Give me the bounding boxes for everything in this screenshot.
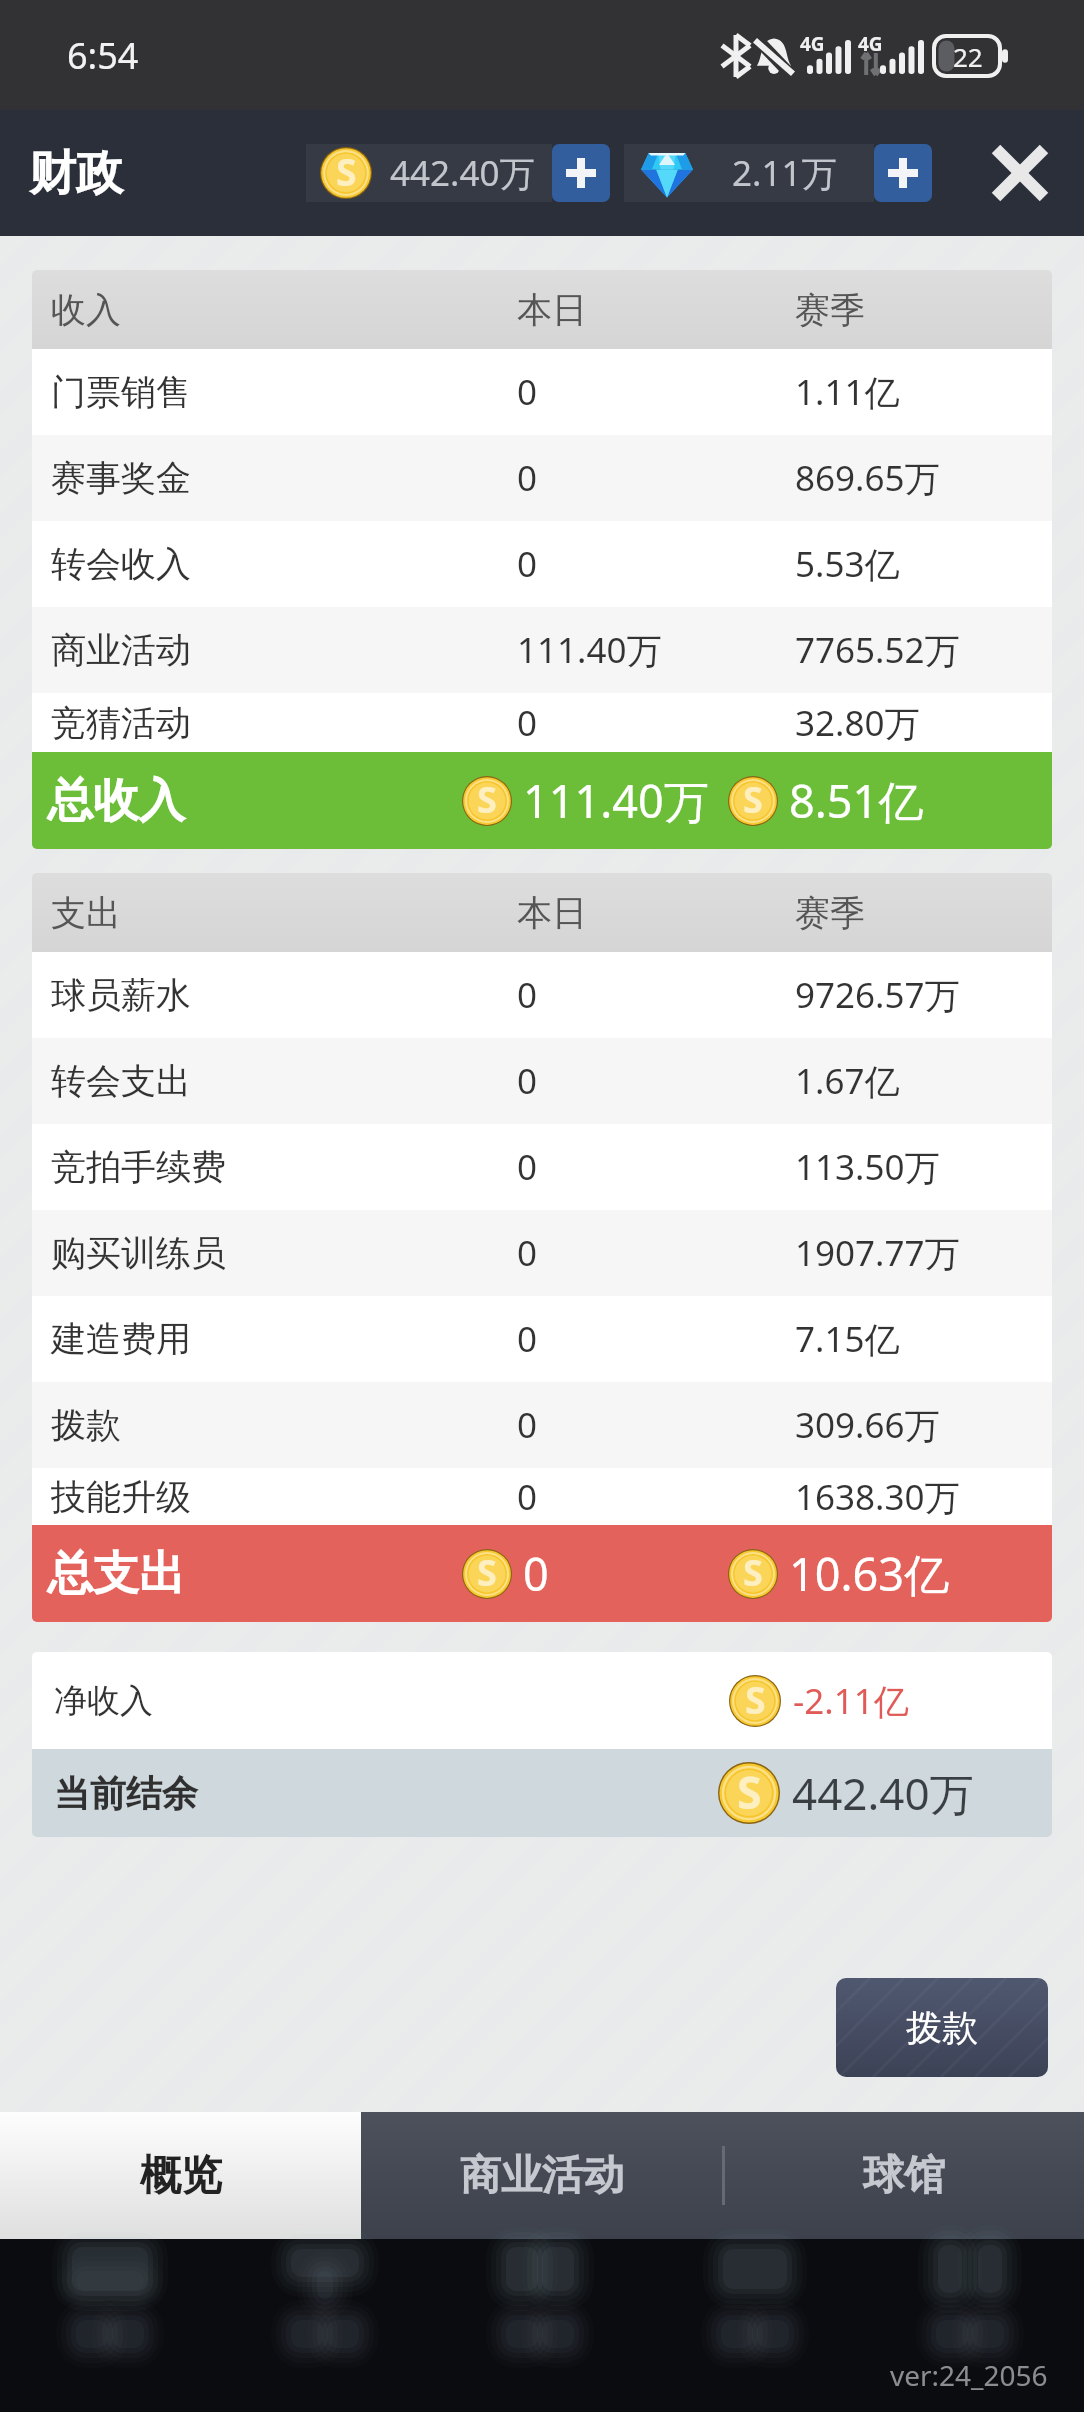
- staticText: 拨款: [906, 2005, 978, 2050]
- staticText: ver:24_2056: [890, 2356, 1048, 2394]
- staticText: 技能升级: [51, 1475, 191, 1519]
- staticText: 0: [517, 1401, 538, 1449]
- button[interactable]: 技能升级: [32, 1468, 1052, 1525]
- staticText: 总支出: [47, 1545, 185, 1603]
- staticText: 球员薪水: [51, 973, 191, 1017]
- staticText: 6:54: [67, 31, 139, 80]
- staticText: 4G: [858, 31, 883, 57]
- staticText: 0: [517, 1473, 538, 1521]
- staticText: 赛季: [795, 891, 865, 935]
- staticText: 0: [517, 368, 538, 416]
- staticText: 当前结余: [54, 1771, 198, 1816]
- staticText: 财政: [29, 144, 123, 203]
- button[interactable]: 赛事奖金: [32, 435, 1052, 521]
- button[interactable]: 商业活动: [32, 607, 1052, 693]
- staticText: 309.66万: [795, 1401, 940, 1449]
- staticText: 门票销售: [51, 370, 191, 414]
- staticText: S: [743, 1548, 763, 1597]
- button[interactable]: 拨款: [32, 1382, 1052, 1468]
- staticText: S: [745, 1674, 766, 1725]
- staticText: 本日: [517, 288, 587, 332]
- staticText: 4G: [800, 31, 825, 57]
- staticText: 111.40万: [523, 770, 709, 831]
- staticText: 869.65万: [795, 454, 940, 502]
- staticText: 净收入: [54, 1680, 153, 1722]
- staticText: 商业活动: [460, 2150, 624, 2202]
- button[interactable]: 门票销售: [32, 349, 1052, 435]
- staticText: 赛事奖金: [51, 456, 191, 500]
- staticText: 1.11亿: [795, 368, 900, 416]
- staticText: S: [336, 146, 357, 197]
- staticText: 转会支出: [51, 1059, 191, 1103]
- staticText: 442.40万: [390, 149, 535, 197]
- staticText: 1907.77万: [795, 1229, 960, 1277]
- button[interactable]: 球馆: [723, 2112, 1084, 2239]
- staticText: 0: [517, 1229, 538, 1277]
- button[interactable]: 概览: [0, 2112, 361, 2239]
- button[interactable]: 商业活动: [361, 2112, 723, 2239]
- staticText: S: [737, 1761, 762, 1822]
- button[interactable]: 球员薪水: [32, 952, 1052, 1038]
- staticText: 113.50万: [795, 1143, 940, 1191]
- staticText: 22: [953, 39, 983, 74]
- button[interactable]: Close: [980, 133, 1060, 213]
- staticText: 竞猜活动: [51, 701, 191, 745]
- staticText: 10.63亿: [789, 1543, 950, 1604]
- button[interactable]: 当前结余: [32, 1749, 1052, 1837]
- staticText: 9726.57万: [795, 971, 960, 1019]
- staticText: 支出: [51, 891, 121, 935]
- staticText: 8.51亿: [789, 770, 924, 831]
- button[interactable]: 建造费用: [32, 1296, 1052, 1382]
- button[interactable]: Add: [552, 144, 610, 202]
- staticText: 概览: [140, 2150, 222, 2202]
- staticText: S: [477, 775, 497, 824]
- staticText: 0: [517, 699, 538, 747]
- staticText: 0: [517, 1143, 538, 1191]
- staticText: 本日: [517, 891, 587, 935]
- staticText: 商业活动: [51, 628, 191, 672]
- button[interactable]: 竞猜活动: [32, 693, 1052, 752]
- staticText: S: [477, 1548, 497, 1597]
- button[interactable]: 净收入: [32, 1652, 1052, 1749]
- button[interactable]: 竞拍手续费: [32, 1124, 1052, 1210]
- button[interactable]: 转会支出: [32, 1038, 1052, 1124]
- staticText: 购买训练员: [51, 1231, 226, 1275]
- staticText: 7765.52万: [795, 626, 960, 674]
- staticText: 2.11万: [732, 149, 837, 197]
- staticText: 竞拍手续费: [51, 1145, 226, 1189]
- staticText: 111.40万: [517, 626, 662, 674]
- staticText: 0: [517, 1057, 538, 1105]
- button[interactable]: 转会收入: [32, 521, 1052, 607]
- staticText: 拨款: [51, 1403, 121, 1447]
- staticText: 1.67亿: [795, 1057, 900, 1105]
- staticText: 转会收入: [51, 542, 191, 586]
- button[interactable]: Add: [874, 144, 932, 202]
- staticText: 0: [517, 1315, 538, 1363]
- staticText: S: [743, 775, 763, 824]
- staticText: 建造费用: [51, 1317, 191, 1361]
- staticText: 0: [517, 971, 538, 1019]
- button[interactable]: 购买训练员: [32, 1210, 1052, 1296]
- button[interactable]: 2.11万: [624, 144, 874, 202]
- staticText: 0: [523, 1543, 549, 1604]
- staticText: 32.80万: [795, 699, 920, 747]
- staticText: 球馆: [863, 2150, 945, 2202]
- button[interactable]: 拨款: [836, 1978, 1048, 2077]
- staticText: 7.15亿: [795, 1315, 900, 1363]
- staticText: 442.40万: [792, 1763, 974, 1823]
- button[interactable]: S: [306, 144, 552, 202]
- staticText: 总收入: [47, 772, 185, 830]
- staticText: 收入: [51, 288, 121, 332]
- staticText: 0: [517, 540, 538, 588]
- staticText: 1638.30万: [795, 1473, 960, 1521]
- staticText: -2.11亿: [793, 1677, 909, 1725]
- staticText: 5.53亿: [795, 540, 900, 588]
- staticText: 0: [517, 454, 538, 502]
- staticText: 赛季: [795, 288, 865, 332]
